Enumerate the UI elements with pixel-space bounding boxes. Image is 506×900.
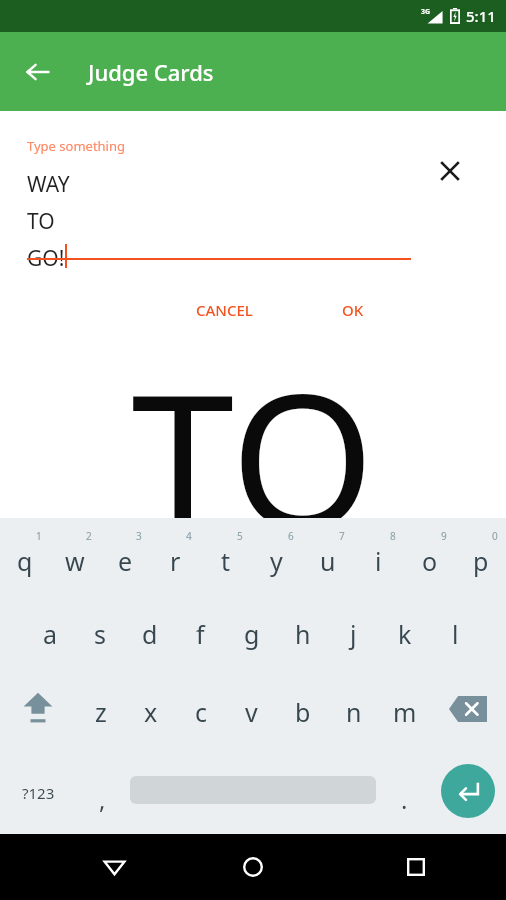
button[interactable]: 5: [200, 518, 251, 596]
button[interactable]: Shift: [0, 674, 76, 752]
staticText: n: [346, 695, 362, 729]
button[interactable]: n: [328, 674, 379, 752]
button[interactable]: 8: [353, 518, 404, 596]
staticText: d: [142, 617, 158, 651]
staticText: w: [65, 544, 85, 578]
staticText: z: [95, 695, 107, 729]
staticText: u: [320, 544, 336, 578]
staticText: 7: [339, 529, 345, 543]
staticText: ?123: [22, 783, 55, 803]
button[interactable]: k: [379, 596, 430, 674]
button[interactable]: Recents: [392, 843, 440, 891]
button[interactable]: Clear: [428, 149, 472, 193]
staticText: k: [398, 617, 412, 651]
button[interactable]: 3: [100, 518, 150, 596]
staticText: c: [195, 695, 208, 729]
button[interactable]: 0: [455, 518, 506, 596]
button[interactable]: 2: [50, 518, 100, 596]
button[interactable]: Home: [229, 843, 277, 891]
button[interactable]: m: [379, 674, 430, 752]
staticText: OK: [342, 300, 364, 320]
button[interactable]: f: [175, 596, 226, 674]
staticText: g: [244, 617, 260, 651]
staticText: CANCEL: [196, 300, 253, 320]
staticText: o: [422, 544, 438, 578]
staticText: l: [452, 617, 459, 651]
staticText: e: [118, 544, 133, 578]
button[interactable]: OK: [330, 294, 376, 326]
button[interactable]: 1: [0, 518, 50, 596]
staticText: y: [270, 544, 283, 578]
staticText: Type something: [27, 137, 125, 155]
staticText: f: [196, 617, 205, 651]
button[interactable]: x: [126, 674, 176, 752]
button[interactable]: Backspace: [430, 674, 506, 752]
button[interactable]: h: [277, 596, 328, 674]
staticText: .: [401, 783, 408, 816]
staticText: 3: [136, 529, 142, 543]
staticText: t: [221, 544, 231, 578]
staticText: 0: [492, 529, 498, 543]
staticText: p: [473, 544, 489, 578]
button[interactable]: d: [125, 596, 175, 674]
staticText: r: [170, 544, 181, 578]
button[interactable]: ?123: [8, 763, 68, 823]
button[interactable]: 7: [302, 518, 353, 596]
button[interactable]: j: [328, 596, 379, 674]
staticText: 2: [86, 529, 92, 543]
button[interactable]: z: [76, 674, 126, 752]
button[interactable]: Enter: [441, 764, 495, 818]
button[interactable]: CANCEL: [184, 294, 265, 326]
button[interactable]: c: [176, 674, 226, 752]
staticText: 6: [288, 529, 294, 543]
button[interactable]: .: [386, 774, 422, 824]
staticText: WAY: [27, 170, 70, 199]
staticText: v: [245, 695, 258, 729]
button[interactable]: ,: [82, 774, 122, 824]
button[interactable]: b: [277, 674, 328, 752]
staticText: x: [144, 695, 158, 729]
staticText: 3G: [421, 7, 431, 17]
staticText: 5: [237, 529, 243, 543]
staticText: 1: [36, 529, 42, 543]
staticText: TO: [27, 207, 55, 236]
button[interactable]: 9: [404, 518, 455, 596]
button[interactable]: 6: [251, 518, 302, 596]
button[interactable]: l: [430, 596, 481, 674]
button[interactable]: g: [226, 596, 277, 674]
staticText: 5:11: [466, 6, 496, 26]
staticText: b: [295, 695, 311, 729]
staticText: i: [375, 544, 382, 578]
staticText: j: [350, 617, 357, 651]
button[interactable]: 4: [150, 518, 200, 596]
button[interactable]: Back: [90, 843, 138, 891]
staticText: ,: [99, 783, 106, 816]
staticText: s: [94, 617, 106, 651]
staticText: h: [295, 617, 311, 651]
staticText: 8: [390, 529, 396, 543]
staticText: m: [393, 695, 417, 729]
staticText: TO: [131, 330, 375, 520]
staticText: 4: [186, 529, 192, 543]
staticText: 9: [441, 529, 447, 543]
button[interactable]: v: [226, 674, 277, 752]
staticText: q: [17, 544, 33, 578]
button[interactable]: a: [25, 596, 75, 674]
button[interactable]: s: [75, 596, 125, 674]
staticText: a: [43, 617, 58, 651]
staticText: Judge Cards: [88, 57, 214, 87]
button[interactable]: Back: [16, 50, 60, 94]
staticText: GO!: [27, 244, 65, 273]
